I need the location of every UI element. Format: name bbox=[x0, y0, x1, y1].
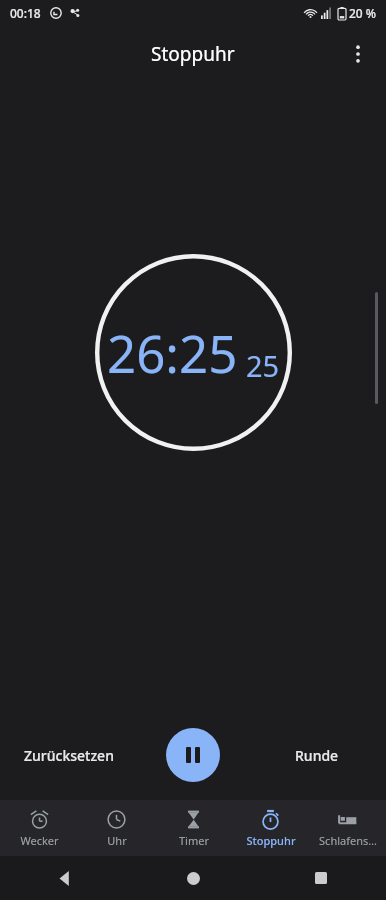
staticText: Timer bbox=[179, 833, 209, 848]
button[interactable]: Wecker bbox=[0, 800, 78, 856]
button[interactable]: Timer bbox=[155, 800, 232, 856]
staticText: Zurücksetzen bbox=[24, 746, 114, 765]
button[interactable]: Runde bbox=[281, 736, 353, 775]
staticText: 20 % bbox=[349, 5, 377, 21]
staticText: Stoppuhr bbox=[151, 41, 235, 67]
staticText: Uhr bbox=[107, 833, 127, 848]
button[interactable]: Weitere Optionen bbox=[336, 32, 380, 76]
staticText: Schlafens… bbox=[319, 833, 377, 848]
button[interactable]: Startbildschirm bbox=[135, 856, 251, 900]
staticText: Wecker bbox=[20, 833, 59, 848]
staticText: 00:18 bbox=[10, 5, 41, 21]
button[interactable]: Stoppuhr bbox=[232, 800, 309, 856]
button[interactable]: Uhr bbox=[78, 800, 155, 856]
button[interactable]: Zurücksetzen bbox=[10, 736, 128, 775]
staticText: Stoppuhr bbox=[246, 833, 296, 848]
staticText: 25 bbox=[246, 346, 280, 385]
button[interactable]: Pause bbox=[166, 728, 220, 782]
staticText: Runde bbox=[295, 746, 339, 765]
button[interactable]: Übersicht bbox=[255, 856, 386, 900]
staticText: 26:25 bbox=[107, 318, 238, 387]
button[interactable]: Schlafens… bbox=[309, 800, 386, 856]
button[interactable]: Zurück bbox=[0, 856, 131, 900]
